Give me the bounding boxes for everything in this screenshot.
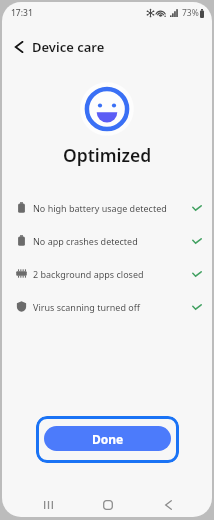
staticText: No app crashes detected [33, 235, 138, 247]
staticText: 17:31 [11, 7, 33, 19]
button[interactable]: Back [6, 34, 32, 60]
button[interactable]: No high battery usage detected [2, 191, 212, 224]
button[interactable]: Virus scanning turned off [2, 290, 212, 323]
staticText: 2 background apps closed [33, 268, 144, 280]
staticText: Virus scanning turned off [33, 301, 140, 313]
button[interactable]: No app crashes detected [2, 224, 212, 257]
staticText: 73% [182, 7, 199, 19]
button[interactable]: Recent apps [28, 496, 68, 514]
button[interactable]: Back [148, 496, 188, 514]
staticText: No high battery usage detected [33, 202, 167, 214]
button[interactable]: Done [44, 426, 171, 451]
staticText: Optimized [2, 143, 212, 167]
button[interactable]: 2 background apps closed [2, 257, 212, 290]
staticText: Device care [32, 38, 105, 56]
staticText: Done [92, 431, 124, 447]
button[interactable]: Home [88, 496, 128, 514]
